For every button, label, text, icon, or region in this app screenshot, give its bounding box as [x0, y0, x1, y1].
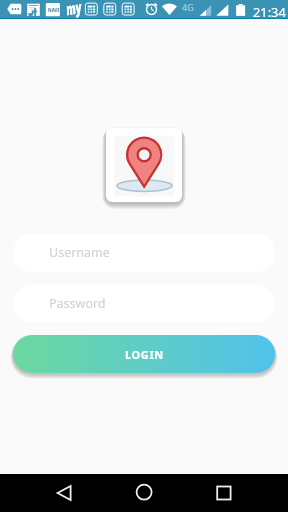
button[interactable]: Recents: [204, 474, 244, 512]
button[interactable]: Username: [13, 233, 275, 272]
staticText: LOGIN: [125, 347, 164, 362]
button[interactable]: Home: [124, 474, 164, 512]
staticText: Username: [49, 244, 110, 261]
button[interactable]: LOGIN: [13, 335, 275, 373]
button[interactable]: Back: [44, 474, 84, 512]
staticText: my: [64, 0, 84, 20]
staticText: 21:34: [253, 3, 286, 20]
staticText: 4G: [182, 1, 194, 13]
staticText: Password: [49, 295, 106, 312]
staticText: NAVI: [48, 7, 60, 13]
button[interactable]: Password: [13, 284, 275, 323]
